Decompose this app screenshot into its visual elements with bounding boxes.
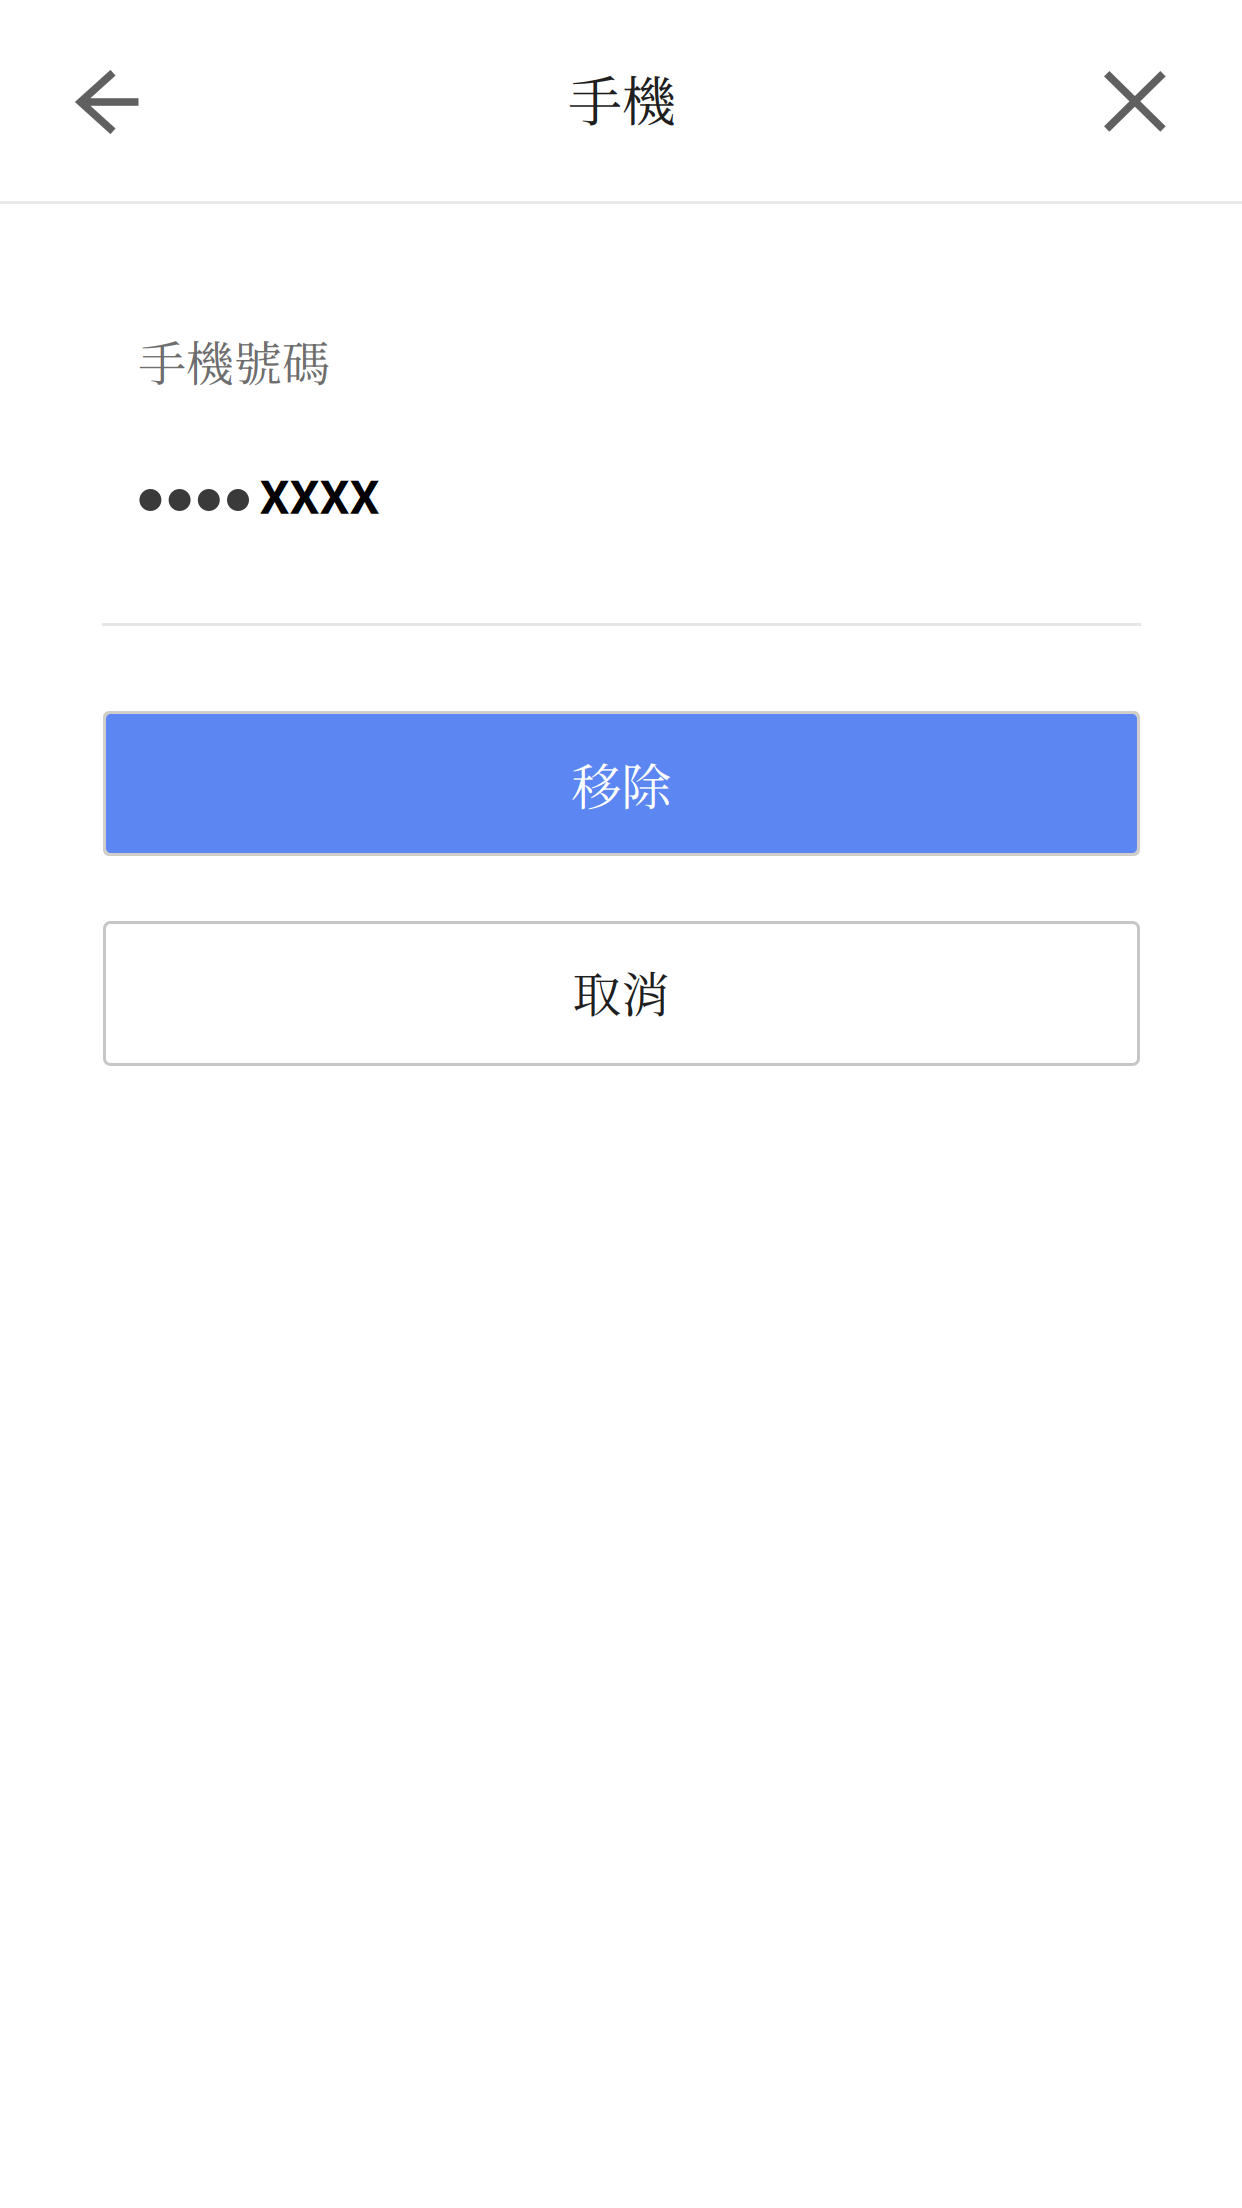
button[interactable]: Close [1042, 0, 1232, 201]
staticText: 取消 [572, 956, 670, 1026]
button[interactable]: 取消 [103, 921, 1140, 1066]
staticText: XXXX [260, 470, 380, 525]
button[interactable]: Back [0, 0, 190, 201]
staticText: 手機 [568, 59, 676, 137]
staticText: 移除 [571, 748, 671, 819]
button[interactable]: 移除 [103, 711, 1140, 856]
staticText: 手機號碼 [138, 326, 330, 395]
